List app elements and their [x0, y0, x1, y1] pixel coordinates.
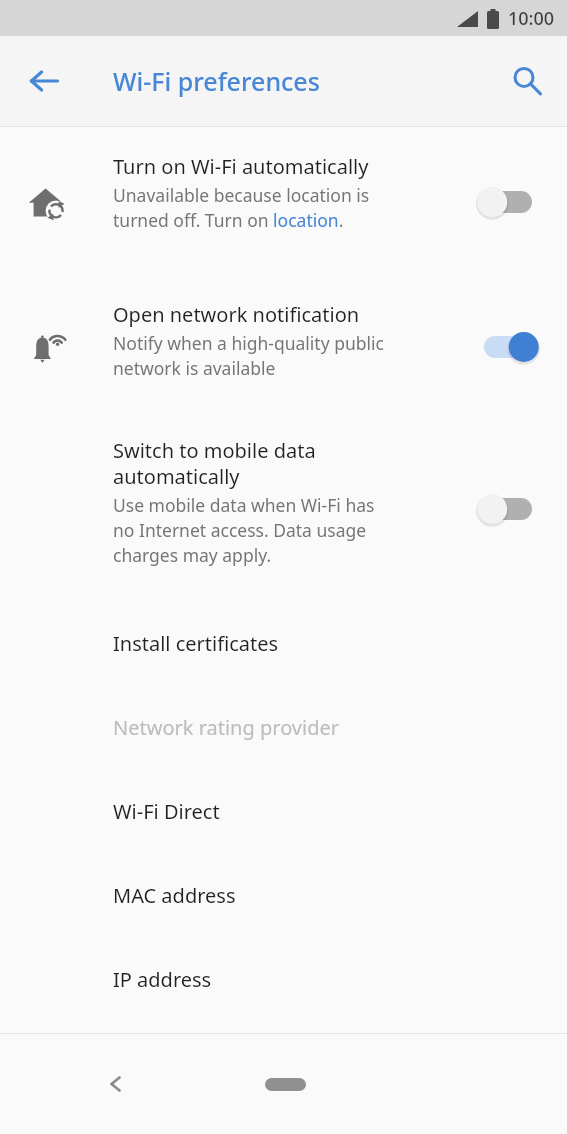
staticText: Network rating provider — [113, 714, 339, 741]
button[interactable]: Home — [250, 1064, 320, 1104]
button[interactable]: Back — [92, 1060, 140, 1108]
staticText: MAC address — [113, 882, 236, 909]
button[interactable]: Back — [14, 51, 74, 111]
staticText: Unavailable because location is turned o… — [113, 183, 370, 232]
button[interactable]: Off — [469, 176, 547, 228]
button[interactable]: Open network notification — [0, 277, 567, 417]
button[interactable]: Wi-Fi Direct — [0, 769, 567, 853]
button[interactable]: IP address — [0, 937, 567, 1021]
button[interactable]: Search — [497, 51, 557, 111]
button[interactable]: On — [469, 321, 547, 373]
button[interactable]: Network rating provider — [0, 685, 567, 769]
staticText: Switch to mobile data automatically — [113, 437, 316, 490]
button[interactable]: Off — [469, 483, 547, 535]
staticText: IP address — [113, 966, 212, 993]
button[interactable]: Install certificates — [0, 601, 567, 685]
staticText: Notify when a high-quality public networ… — [113, 331, 384, 380]
staticText: Install certificates — [113, 630, 279, 657]
staticText: Turn on Wi-Fi automatically — [113, 153, 369, 180]
button[interactable]: Turn on Wi-Fi automatically — [0, 127, 567, 277]
button[interactable]: Switch to mobile data automatically — [0, 417, 567, 601]
staticText: Wi-Fi preferences — [113, 64, 320, 98]
button[interactable]: MAC address — [0, 853, 567, 937]
staticText: 10:00 — [508, 6, 555, 31]
staticText: Use mobile data when Wi-Fi has no Intern… — [113, 493, 375, 567]
staticText: Wi-Fi Direct — [113, 798, 220, 825]
staticText: Open network notification — [113, 301, 360, 328]
